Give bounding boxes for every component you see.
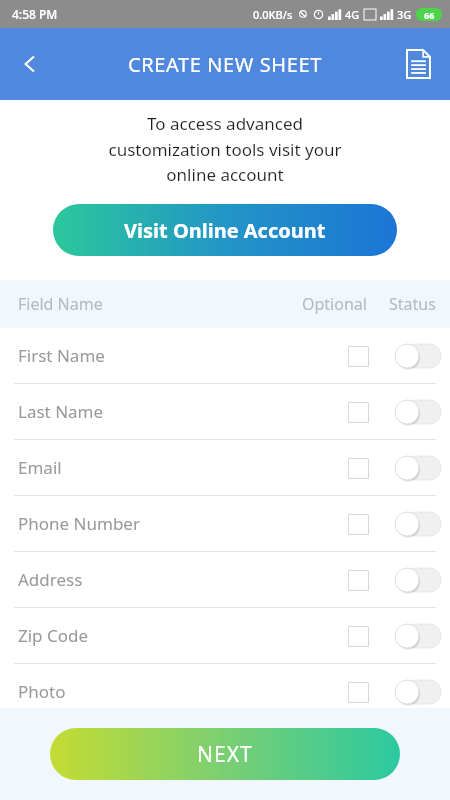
- button[interactable]: Status toggle: [392, 668, 444, 716]
- staticText: NEXT: [197, 740, 253, 769]
- staticText: Phone Number: [18, 512, 334, 535]
- staticText: 4:58 PM: [12, 6, 58, 22]
- button[interactable]: Optional: [334, 668, 382, 716]
- staticText: 3G: [397, 7, 412, 22]
- staticText: Zip Code: [18, 624, 334, 647]
- staticText: Field Name: [18, 293, 103, 315]
- staticText: Last Name: [18, 400, 334, 423]
- button[interactable]: Status toggle: [392, 724, 444, 772]
- staticText: 66: [424, 9, 435, 21]
- button[interactable]: Status toggle: [392, 612, 444, 660]
- button[interactable]: Photo: [0, 664, 450, 719]
- button[interactable]: Phone Number: [0, 496, 450, 551]
- button[interactable]: NEXT: [50, 728, 400, 780]
- button[interactable]: Last Name: [0, 384, 450, 439]
- staticText: To access advanced customization tools v…: [24, 112, 426, 186]
- button[interactable]: Optional: [334, 500, 382, 548]
- button[interactable]: Optional: [334, 724, 382, 772]
- button[interactable]: Optional: [334, 612, 382, 660]
- button[interactable]: Notes: [0, 720, 450, 775]
- button[interactable]: Optional: [334, 388, 382, 436]
- button[interactable]: First Name: [0, 328, 450, 383]
- button[interactable]: Address: [0, 552, 450, 607]
- button[interactable]: Status toggle: [392, 332, 444, 380]
- button[interactable]: Optional: [334, 556, 382, 604]
- button[interactable]: Back: [6, 40, 54, 88]
- button[interactable]: Email: [0, 440, 450, 495]
- staticText: Photo: [18, 680, 334, 703]
- staticText: Optional: [302, 293, 367, 315]
- button[interactable]: Optional: [334, 332, 382, 380]
- button[interactable]: Optional: [334, 444, 382, 492]
- button[interactable]: Zip Code: [0, 608, 450, 663]
- button[interactable]: Status toggle: [392, 556, 444, 604]
- button[interactable]: Status toggle: [392, 500, 444, 548]
- staticText: Email: [18, 456, 334, 479]
- button[interactable]: Visit Online Account: [53, 204, 397, 256]
- staticText: CREATE NEW SHEET: [128, 51, 322, 78]
- button[interactable]: Sheet: [394, 40, 442, 88]
- staticText: 4G: [345, 7, 360, 22]
- staticText: First Name: [18, 344, 334, 367]
- button[interactable]: Status toggle: [392, 388, 444, 436]
- button[interactable]: Status toggle: [392, 444, 444, 492]
- staticText: 0.0KB/s: [253, 7, 293, 22]
- staticText: Notes: [18, 736, 334, 759]
- staticText: Status: [389, 293, 436, 315]
- staticText: Visit Online Account: [124, 217, 326, 244]
- staticText: Address: [18, 568, 334, 591]
